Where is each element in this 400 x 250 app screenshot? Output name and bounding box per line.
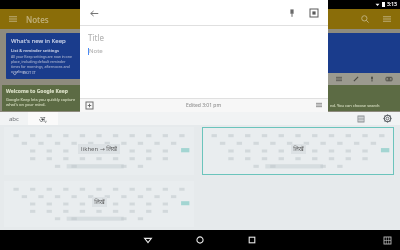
button[interactable]: Reminder bbox=[306, 5, 322, 21]
button[interactable]: Keyboard layouts bbox=[354, 112, 367, 125]
button[interactable]: likhen → लिखें bbox=[4, 127, 194, 175]
staticText: Welcome to Google Keep bbox=[6, 88, 68, 95]
staticText: Google Keep lets you quickly capture wha… bbox=[6, 97, 76, 107]
button[interactable]: Search bbox=[358, 12, 372, 26]
button[interactable]: Add bbox=[84, 100, 94, 110]
button[interactable]: GOT IT bbox=[12, 69, 36, 76]
button[interactable]: Settings bbox=[381, 112, 394, 125]
staticText: nd. You can choose search bbox=[330, 103, 380, 108]
staticText: abc bbox=[9, 115, 19, 123]
staticText: List & reminder settings bbox=[11, 48, 59, 53]
button[interactable]: abc bbox=[0, 112, 28, 125]
button[interactable]: What's new in Keep bbox=[6, 33, 84, 79]
staticText: Title bbox=[88, 32, 104, 43]
button[interactable]: Pin note bbox=[284, 5, 300, 21]
button[interactable]: More options bbox=[314, 100, 324, 110]
button[interactable]: Recent apps bbox=[244, 232, 260, 248]
button[interactable]: अ, bbox=[28, 112, 58, 125]
staticText: All your Keep settings are now in one pl… bbox=[11, 54, 72, 74]
staticText: लिखें bbox=[94, 198, 105, 206]
staticText: What's new in Keep bbox=[11, 37, 66, 45]
button[interactable]: Welcome to Google Keep bbox=[2, 85, 84, 111]
button[interactable]: New voice note bbox=[367, 74, 377, 84]
button[interactable]: Open navigation drawer bbox=[6, 12, 20, 26]
button[interactable]: लिखें bbox=[4, 181, 194, 227]
button[interactable]: Change keyboard bbox=[380, 233, 394, 247]
button[interactable]: Back bbox=[86, 5, 102, 21]
staticText: Note bbox=[89, 47, 103, 55]
button[interactable]: New list bbox=[334, 74, 344, 84]
staticText: likhen → लिखें bbox=[81, 145, 117, 153]
staticText: अ, bbox=[39, 113, 48, 124]
staticText: GOT IT bbox=[23, 70, 36, 75]
staticText: लिखें bbox=[293, 145, 304, 153]
button[interactable]: Back bbox=[140, 232, 156, 248]
button[interactable]: Toggle list view bbox=[380, 12, 394, 26]
button[interactable]: New photo note bbox=[384, 74, 394, 84]
staticText: Edited 3:01 pm bbox=[186, 102, 222, 109]
staticText: Notes bbox=[26, 14, 49, 25]
button[interactable]: New drawing bbox=[351, 74, 361, 84]
staticText: 3:13 bbox=[387, 1, 397, 8]
button[interactable]: Home bbox=[192, 232, 208, 248]
button[interactable]: लिखें bbox=[202, 127, 394, 175]
